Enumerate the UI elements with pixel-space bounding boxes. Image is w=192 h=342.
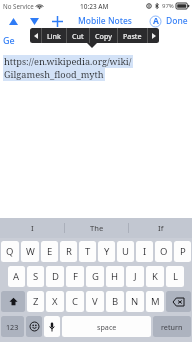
button[interactable]: Q: [1, 241, 19, 262]
button[interactable]: Previous: [4, 12, 22, 30]
staticText: https://en.wikipedia.org/wiki/: [4, 55, 132, 68]
button[interactable]: O: [155, 241, 172, 262]
staticText: V: [92, 295, 98, 308]
staticText: U: [122, 245, 129, 258]
button[interactable]: T: [79, 241, 96, 262]
button[interactable]: Cut: [67, 28, 89, 43]
button[interactable]: Shift: [1, 291, 25, 312]
button[interactable]: F: [66, 266, 84, 287]
button[interactable]: Backspace: [166, 291, 191, 312]
staticText: Z: [33, 295, 39, 308]
staticText: 97%: [162, 2, 174, 10]
staticText: L: [173, 270, 178, 283]
staticText: Copy: [95, 31, 112, 41]
staticText: Gilgamesh_flood_myth: [4, 68, 104, 81]
staticText: 123: [6, 322, 19, 332]
staticText: M: [151, 295, 160, 308]
button[interactable]: Z: [27, 291, 44, 312]
staticText: space: [97, 322, 117, 332]
button[interactable]: C: [66, 291, 84, 312]
button[interactable]: Dictation: [44, 316, 60, 337]
button[interactable]: The: [65, 218, 128, 238]
staticText: Paste: [123, 31, 142, 41]
staticText: Y: [104, 245, 110, 258]
button[interactable]: V: [86, 291, 104, 312]
staticText: G: [92, 270, 99, 283]
staticText: C: [72, 295, 79, 308]
button[interactable]: J: [126, 266, 144, 287]
button[interactable]: space: [62, 316, 151, 337]
button[interactable]: Next: [25, 12, 43, 30]
button[interactable]: Done: [166, 15, 188, 27]
button[interactable]: Add: [48, 12, 66, 30]
staticText: Ge: [3, 34, 15, 46]
staticText: F: [73, 270, 78, 283]
button[interactable]: D: [46, 266, 64, 287]
staticText: W: [26, 245, 35, 258]
button[interactable]: M: [146, 291, 164, 312]
button[interactable]: U: [117, 241, 134, 262]
staticText: N: [131, 295, 139, 308]
button[interactable]: Emoji: [26, 316, 42, 337]
button[interactable]: P: [174, 241, 191, 262]
staticText: The: [90, 223, 104, 233]
staticText: I: [143, 245, 147, 258]
button[interactable]: Format: [146, 12, 164, 30]
staticText: 10:23 AM: [80, 2, 109, 11]
button[interactable]: Mobile Notes: [78, 15, 133, 27]
button[interactable]: Paste: [118, 28, 147, 43]
staticText: Mobile Notes: [78, 15, 133, 27]
button[interactable]: W: [21, 241, 39, 262]
button[interactable]: Previous options: [30, 28, 41, 43]
button[interactable]: X: [46, 291, 64, 312]
staticText: H: [111, 270, 119, 283]
button[interactable]: N: [126, 291, 144, 312]
button[interactable]: R: [60, 241, 77, 262]
button[interactable]: E: [41, 241, 58, 262]
staticText: D: [52, 270, 59, 283]
button[interactable]: A: [8, 266, 25, 287]
staticText: If: [158, 223, 164, 233]
button[interactable]: I: [136, 241, 153, 262]
staticText: R: [66, 245, 72, 258]
button[interactable]: G: [86, 266, 104, 287]
button[interactable]: B: [106, 291, 124, 312]
staticText: E: [47, 245, 53, 258]
button[interactable]: More options: [148, 28, 159, 43]
staticText: T: [85, 245, 91, 258]
button[interactable]: If: [129, 218, 192, 238]
button[interactable]: L: [166, 266, 184, 287]
staticText: J: [134, 270, 137, 283]
staticText: Q: [6, 245, 14, 258]
button[interactable]: 123: [1, 316, 24, 337]
button[interactable]: I: [0, 218, 64, 238]
staticText: Cut: [72, 31, 84, 41]
staticText: K: [152, 270, 158, 283]
staticText: I: [31, 223, 34, 233]
button[interactable]: Copy: [90, 28, 117, 43]
staticText: O: [160, 245, 168, 258]
staticText: return: [161, 322, 183, 332]
staticText: S: [33, 270, 39, 283]
button[interactable]: H: [106, 266, 124, 287]
staticText: No Service: [3, 2, 34, 10]
staticText: A: [153, 15, 159, 27]
staticText: X: [52, 295, 58, 308]
button[interactable]: return: [153, 316, 191, 337]
staticText: A: [13, 270, 20, 283]
button[interactable]: S: [27, 266, 44, 287]
staticText: B: [112, 295, 119, 308]
staticText: Link: [47, 31, 61, 41]
staticText: P: [180, 245, 186, 258]
button[interactable]: Link: [42, 28, 66, 43]
staticText: Done: [166, 15, 188, 27]
button[interactable]: K: [146, 266, 164, 287]
button[interactable]: Y: [98, 241, 115, 262]
